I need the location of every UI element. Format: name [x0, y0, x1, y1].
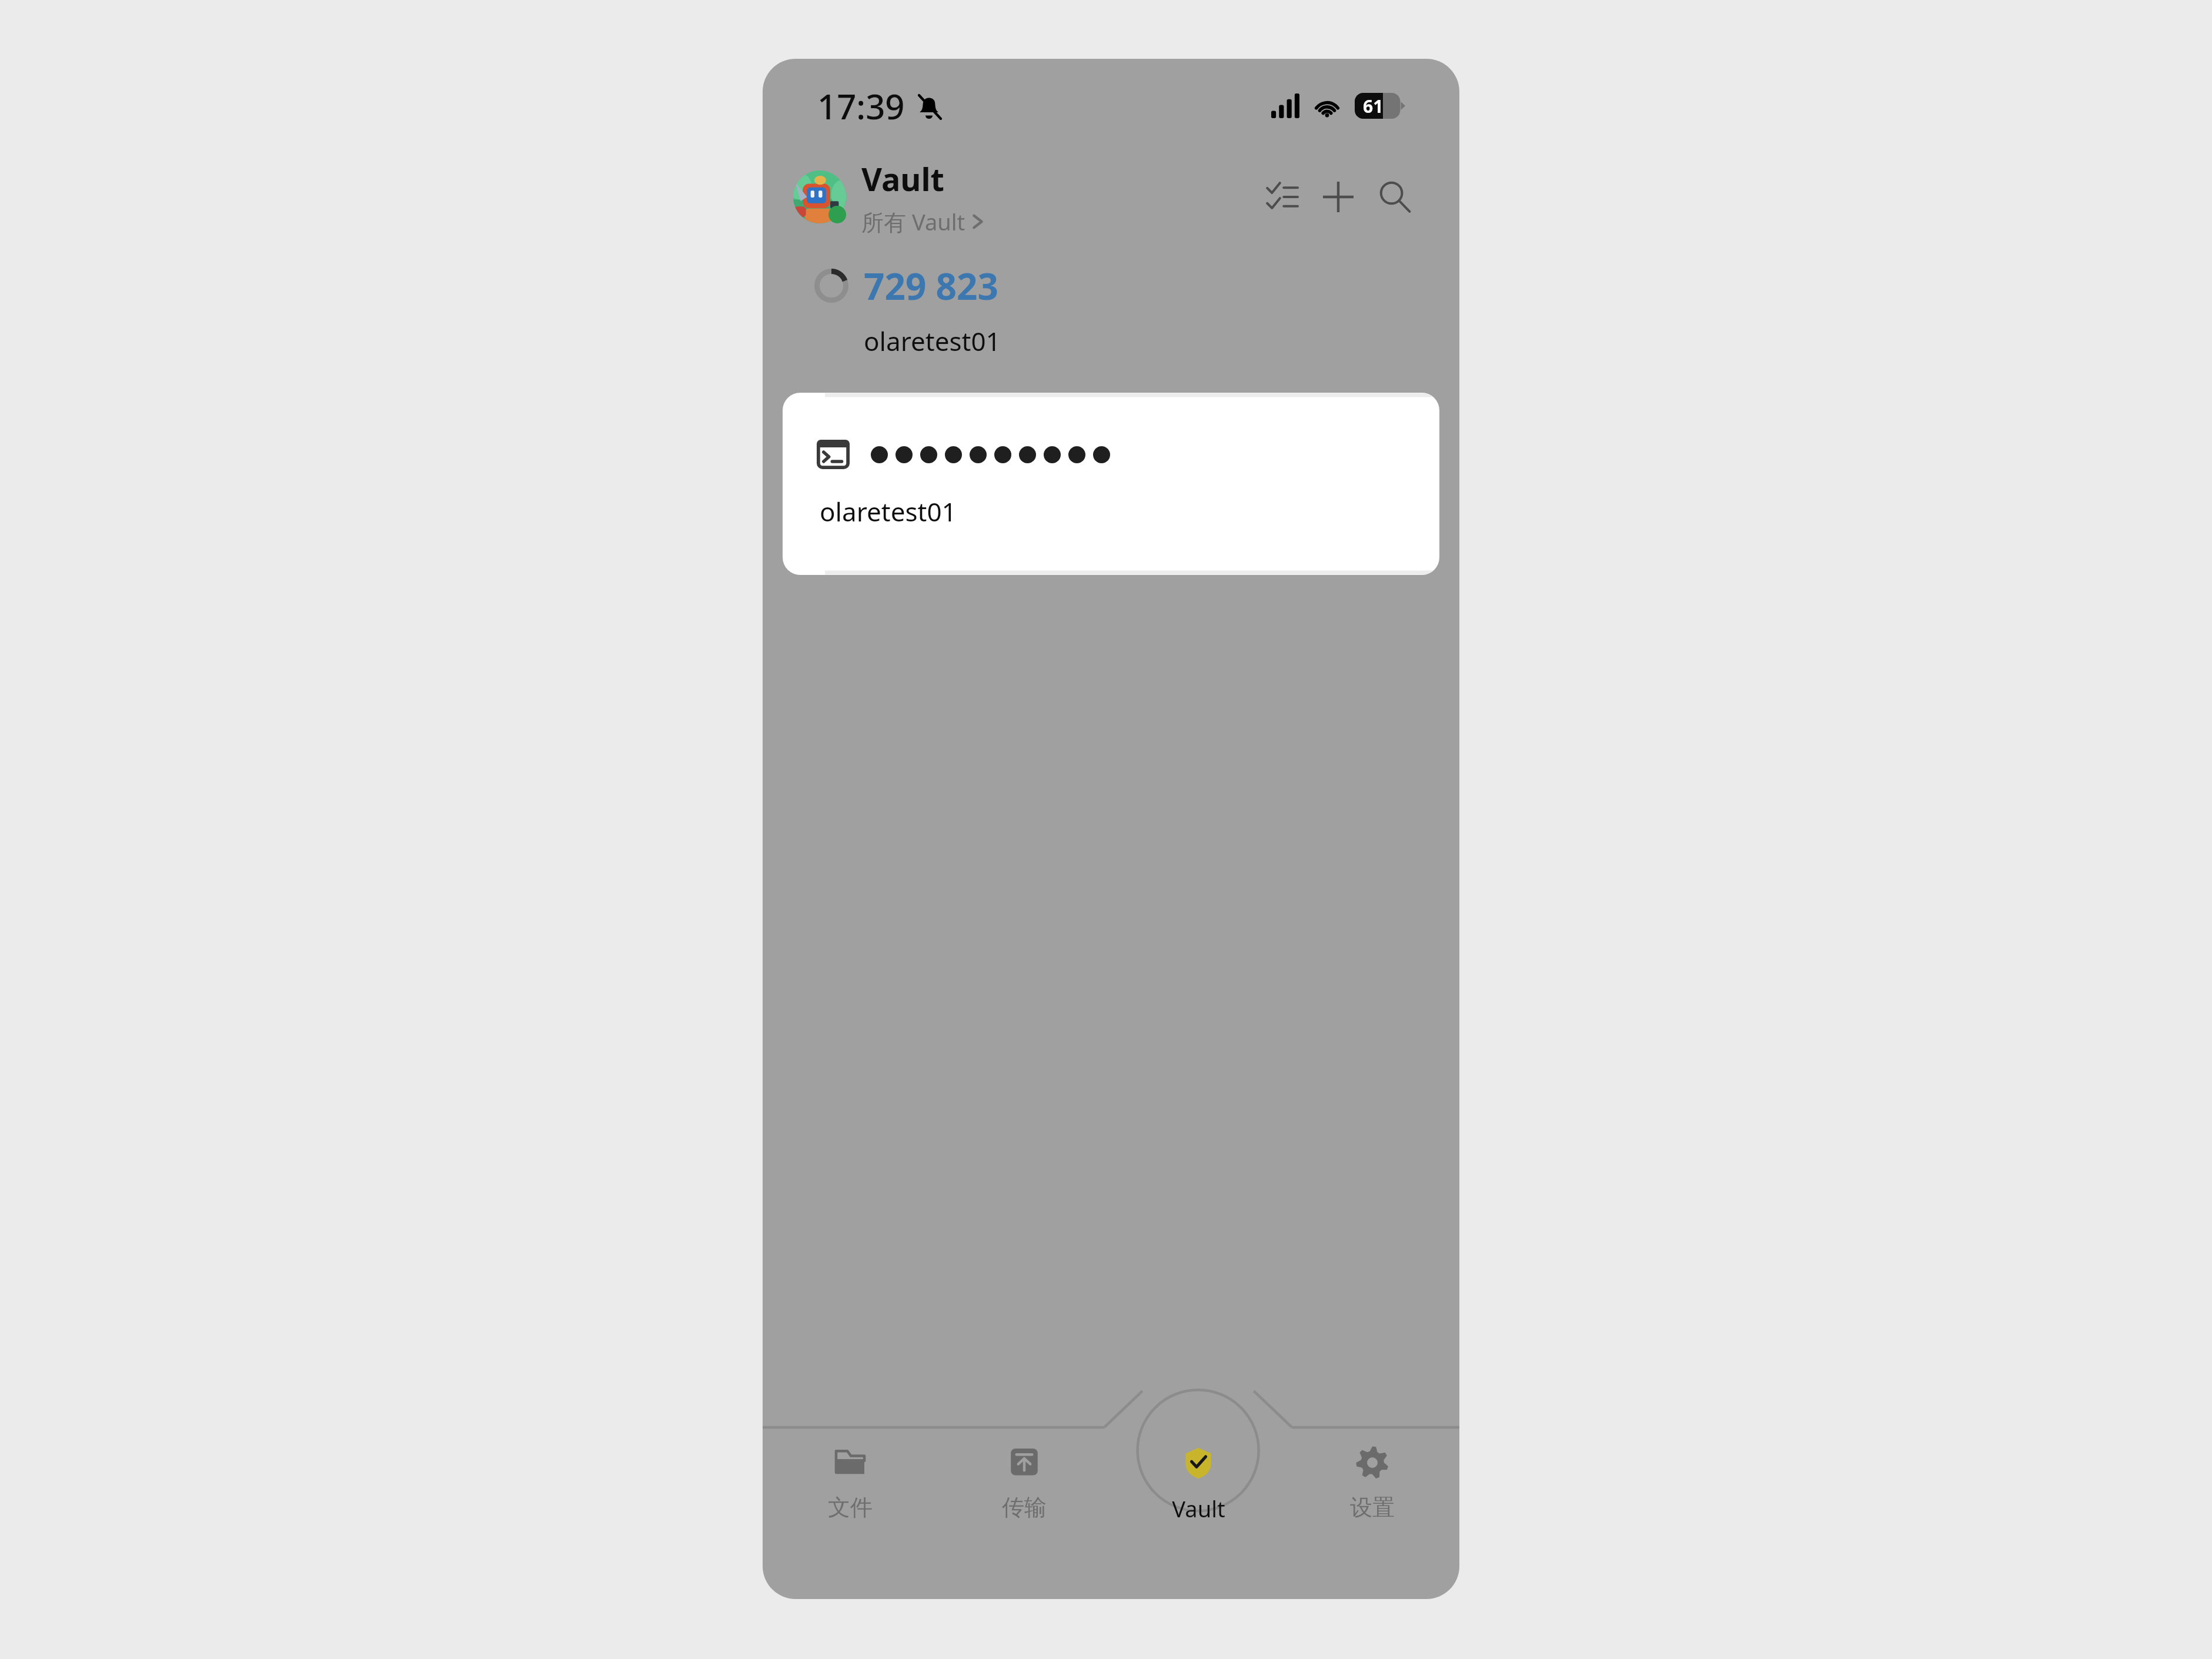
staticText: Vault: [861, 157, 944, 200]
button[interactable]: 设置: [1285, 1430, 1459, 1521]
button[interactable]: Add: [1310, 169, 1366, 225]
button[interactable]: Search: [1366, 169, 1423, 225]
button[interactable]: 文件: [763, 1430, 937, 1521]
staticText: 729 823: [864, 261, 998, 310]
staticText: 17:39: [817, 83, 905, 129]
staticText: 所有 Vault: [861, 206, 965, 237]
staticText: olaretest01: [864, 323, 1001, 359]
staticText: 61: [1363, 94, 1384, 118]
button[interactable]: Vault: [1111, 1430, 1285, 1524]
staticText: 文件: [828, 1493, 873, 1521]
button[interactable]: Select items: [1254, 169, 1310, 225]
button[interactable]: Vault: [793, 157, 984, 237]
button[interactable]: 传输: [937, 1430, 1111, 1521]
staticText: 传输: [1002, 1493, 1047, 1521]
button[interactable]: olaretest01: [783, 393, 1439, 575]
staticText: olaretest01: [820, 494, 957, 529]
staticText: Vault: [1172, 1493, 1225, 1524]
staticText: 设置: [1350, 1493, 1395, 1521]
